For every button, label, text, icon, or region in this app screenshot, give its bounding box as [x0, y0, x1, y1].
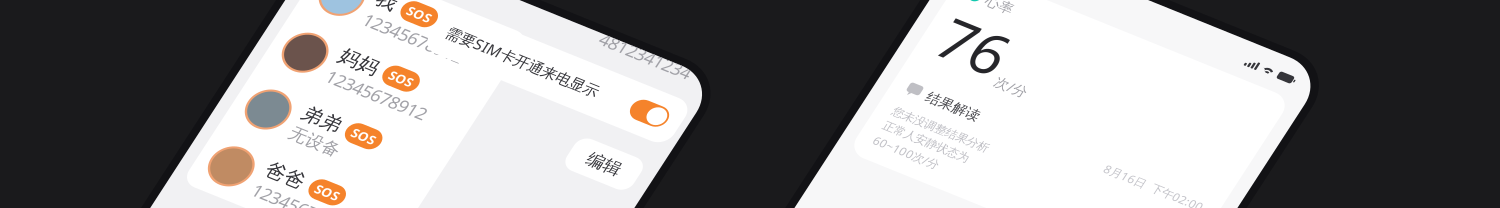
staticText: SOS	[148, 204, 176, 208]
button[interactable]: 我	[14, 34, 260, 111]
button[interactable]: 需要SIM卡开通来电显示	[162, 36, 462, 94]
button[interactable]: 妈妈	[14, 111, 260, 188]
staticText: 4812341234	[330, 0, 440, 19]
staticText: 12345678912	[88, 151, 209, 177]
button[interactable]: 弟弟	[14, 188, 260, 208]
staticText: 需要SIM卡开通来电显示	[177, 53, 362, 76]
button[interactable]: 编辑	[372, 118, 454, 161]
staticText: 8月16日 下午02:00	[276, 190, 396, 208]
